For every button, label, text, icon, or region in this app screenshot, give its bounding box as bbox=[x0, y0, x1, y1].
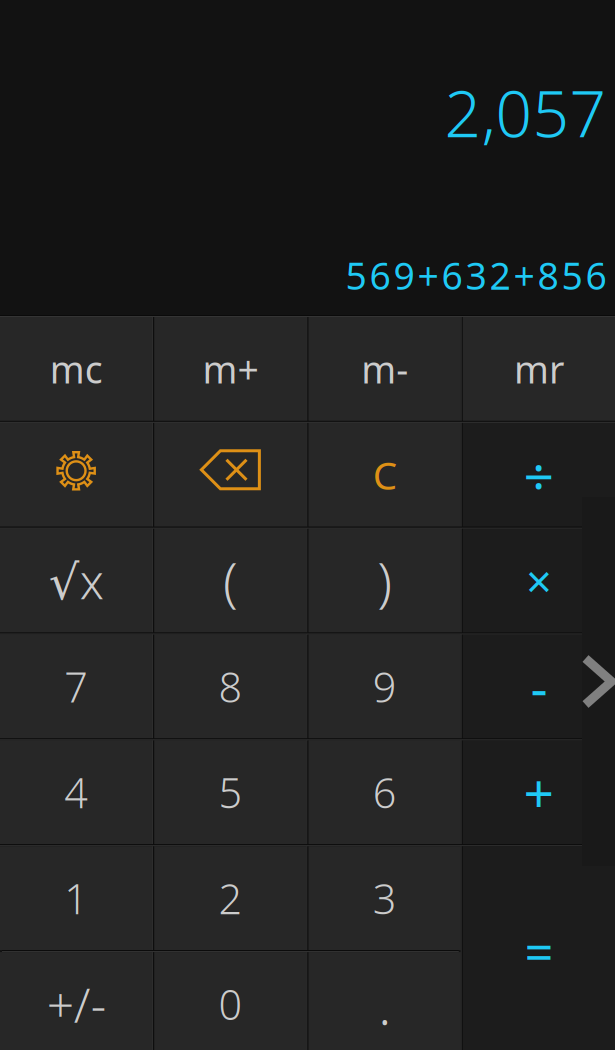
button[interactable]: √x bbox=[0, 529, 152, 632]
staticText: ÷ bbox=[523, 439, 554, 510]
staticText: 5 bbox=[218, 765, 242, 820]
button[interactable]: mr bbox=[463, 317, 615, 421]
button[interactable]: 5 bbox=[154, 740, 306, 844]
button[interactable]: 8 bbox=[154, 635, 306, 738]
button[interactable]: 6 bbox=[308, 740, 461, 844]
staticText: 3 bbox=[373, 871, 397, 926]
staticText: 2 bbox=[218, 871, 242, 926]
button[interactable]: 0 bbox=[154, 952, 306, 1050]
staticText: mr bbox=[514, 344, 564, 394]
staticText: = bbox=[524, 917, 553, 985]
staticText: ( bbox=[223, 545, 238, 616]
staticText: × bbox=[526, 550, 552, 611]
button[interactable]: = bbox=[463, 846, 615, 1050]
button[interactable]: - bbox=[463, 635, 615, 738]
button[interactable]: 1 bbox=[0, 846, 152, 950]
staticText: 7 bbox=[64, 659, 88, 714]
button[interactable]: 4 bbox=[0, 740, 152, 844]
button[interactable]: mc bbox=[0, 317, 152, 421]
staticText: 8 bbox=[218, 659, 242, 714]
staticText: C bbox=[373, 449, 397, 500]
button[interactable]: Open history bbox=[582, 497, 615, 866]
button[interactable]: 7 bbox=[0, 635, 152, 738]
staticText: m- bbox=[361, 344, 408, 394]
staticText: 9 bbox=[373, 659, 397, 714]
staticText: 2,057 bbox=[444, 70, 606, 155]
staticText: m+ bbox=[202, 344, 258, 394]
staticText: 0 bbox=[218, 977, 242, 1031]
button[interactable]: . bbox=[308, 952, 461, 1050]
button[interactable]: 2 bbox=[154, 846, 306, 950]
button[interactable]: m+ bbox=[154, 317, 306, 421]
button[interactable]: Delete bbox=[154, 423, 306, 527]
staticText: ) bbox=[377, 545, 392, 616]
staticText: 569+632+856 bbox=[345, 250, 606, 300]
button[interactable]: 9 bbox=[308, 635, 461, 738]
button[interactable]: 3 bbox=[308, 846, 461, 950]
staticText: +/- bbox=[47, 972, 106, 1036]
button[interactable]: +/- bbox=[0, 952, 152, 1050]
button[interactable]: ) bbox=[308, 529, 461, 632]
staticText: 6 bbox=[373, 765, 397, 820]
button[interactable]: Settings bbox=[0, 423, 152, 527]
button[interactable]: + bbox=[463, 740, 615, 844]
staticText: . bbox=[378, 969, 391, 1039]
staticText: 4 bbox=[64, 765, 88, 820]
button[interactable]: ÷ bbox=[463, 423, 615, 527]
staticText: 1 bbox=[64, 871, 88, 926]
button[interactable]: C bbox=[308, 423, 461, 527]
staticText: mc bbox=[50, 344, 103, 394]
button[interactable]: ( bbox=[154, 529, 306, 632]
button[interactable]: × bbox=[463, 529, 615, 632]
staticText: √x bbox=[49, 549, 104, 612]
staticText: - bbox=[530, 651, 547, 722]
button[interactable]: m- bbox=[308, 317, 461, 421]
staticText: + bbox=[523, 757, 554, 828]
